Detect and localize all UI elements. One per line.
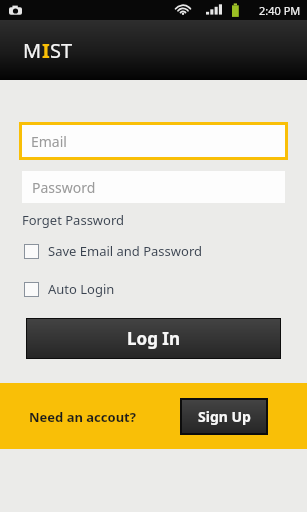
button[interactable]: Save Email and Password: [24, 240, 264, 262]
staticText: I: [42, 37, 50, 64]
staticText: Password: [32, 178, 96, 197]
staticText: 2:40 PM: [259, 3, 301, 18]
staticText: ST: [50, 37, 73, 64]
button[interactable]: Email: [19, 122, 288, 160]
staticText: Forget Password: [22, 211, 125, 229]
button[interactable]: Auto Login: [24, 278, 184, 300]
staticText: Email: [31, 132, 67, 151]
button[interactable]: Sign Up: [180, 398, 268, 435]
button[interactable]: Forget Password: [22, 211, 125, 229]
staticText: Save Email and Password: [48, 242, 203, 260]
staticText: Auto Login: [48, 280, 115, 298]
staticText: M: [23, 37, 42, 64]
staticText: Log In: [127, 327, 180, 350]
button[interactable]: Password: [22, 171, 285, 203]
button[interactable]: Log In: [26, 318, 281, 359]
staticText: Need an accout?: [29, 408, 136, 426]
staticText: Sign Up: [198, 407, 251, 426]
